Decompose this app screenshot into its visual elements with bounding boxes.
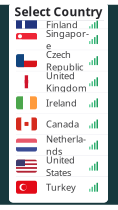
staticText: Singapore: [46, 27, 89, 52]
button[interactable]: Canada: [9, 114, 108, 134]
button[interactable]: Netherlands: [9, 135, 108, 155]
staticText: Finland: [46, 18, 78, 31]
button[interactable]: United Kingdom: [9, 71, 108, 92]
button[interactable]: United States: [9, 156, 108, 176]
button[interactable]: Turkey: [9, 177, 108, 197]
button[interactable]: Czech Republic: [9, 50, 108, 71]
button[interactable]: Ireland: [9, 93, 108, 113]
staticText: Netherlands: [46, 133, 86, 157]
staticText: Czech Republic: [46, 48, 83, 73]
staticText: Canada: [46, 118, 79, 130]
button[interactable]: Finland: [9, 14, 108, 35]
staticText: United Kingdom: [46, 69, 87, 94]
button[interactable]: Singapore: [9, 29, 108, 50]
staticText: United States: [46, 154, 75, 179]
staticText: Ireland: [46, 97, 77, 109]
staticText: Turkey: [46, 181, 76, 193]
staticText: Select Country: [14, 3, 102, 19]
